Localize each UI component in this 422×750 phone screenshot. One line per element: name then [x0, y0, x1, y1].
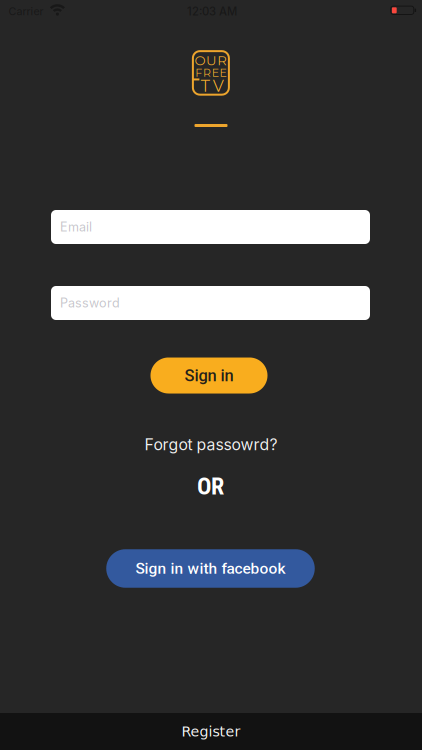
button[interactable]: Register — [0, 713, 422, 750]
staticText: OUR — [194, 52, 227, 68]
button[interactable]: Forgot passowrd? — [144, 435, 277, 454]
button[interactable]: Sign in with facebook — [106, 549, 315, 588]
staticText: TV — [201, 76, 224, 96]
button[interactable]: Sign in — [150, 357, 267, 393]
button[interactable]: Password — [51, 286, 370, 320]
staticText: FREE — [195, 66, 226, 79]
staticText: Sign in — [184, 366, 233, 385]
staticText: 12:03 AM — [187, 4, 237, 18]
staticText: Password — [60, 295, 120, 311]
staticText: OR — [197, 472, 224, 500]
staticText: Sign in with facebook — [135, 559, 285, 578]
staticText: Register — [181, 723, 240, 740]
staticText: Carrier — [8, 5, 43, 18]
staticText: Email — [60, 219, 92, 235]
button[interactable]: Email — [51, 210, 370, 244]
staticText: Forgot passowrd? — [144, 435, 277, 454]
